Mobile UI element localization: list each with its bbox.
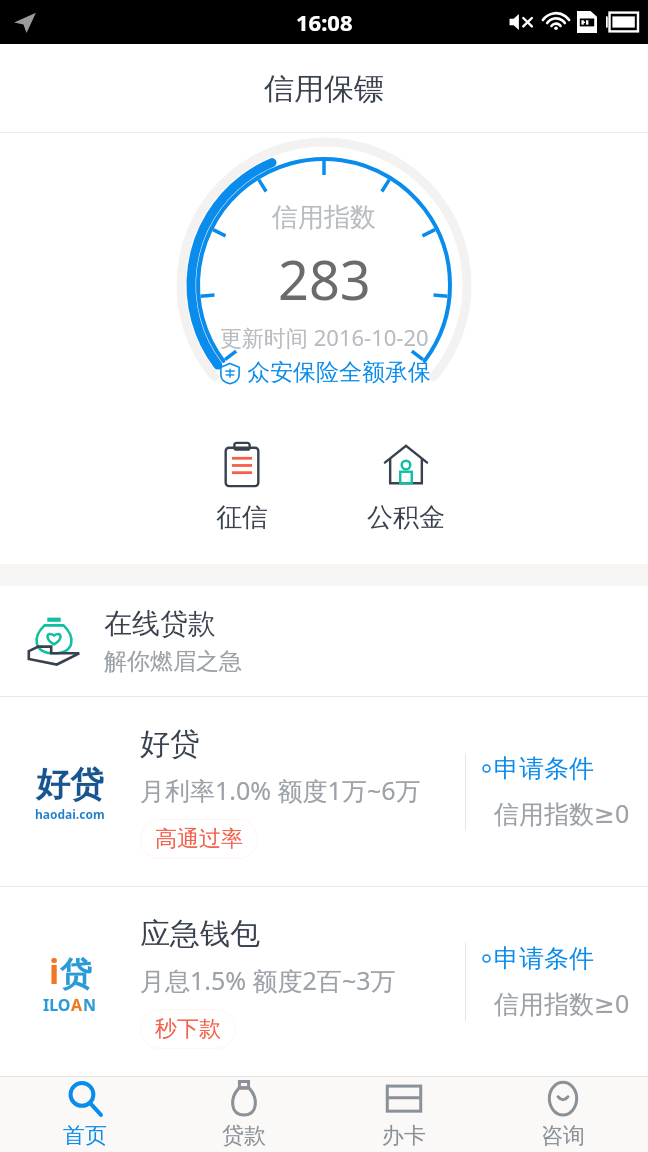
button[interactable]: 咨询 <box>488 1077 638 1152</box>
staticText: 信用保镖 <box>264 70 384 108</box>
staticText: 信用指数 <box>272 201 376 234</box>
staticText: 秒下款 <box>155 1015 221 1043</box>
staticText: A <box>71 994 83 1016</box>
button[interactable]: 办卡 <box>329 1077 479 1152</box>
staticText: ILO <box>43 994 71 1016</box>
staticText: 好贷 <box>36 763 104 806</box>
staticText: 283 <box>278 242 371 316</box>
button[interactable]: 贷款 <box>169 1077 319 1152</box>
button[interactable]: i <box>0 887 648 1076</box>
staticText: 月息1.5% 额度2百~3万 <box>140 963 396 997</box>
staticText: 信用指数≥0 <box>494 986 630 1020</box>
staticText: i <box>49 948 60 994</box>
staticText: 更新时间 2016-10-20 <box>220 322 429 352</box>
other: 征信 <box>218 441 266 489</box>
button[interactable]: 申请条件 <box>466 943 648 1020</box>
staticText: 在线贷款 <box>104 606 216 641</box>
button[interactable]: 申请条件 <box>466 753 648 830</box>
staticText: 征信 <box>216 501 268 534</box>
staticText: 首页 <box>63 1122 107 1150</box>
staticText: 贷款 <box>222 1122 266 1150</box>
staticText: 应急钱包 <box>140 915 260 953</box>
button[interactable]: 征信 <box>197 437 287 538</box>
staticText: 月利率1.0% 额度1万~6万 <box>140 773 421 807</box>
staticText: 申请条件 <box>494 753 594 784</box>
staticText: N <box>83 994 97 1016</box>
staticText: haodai.com <box>35 806 105 822</box>
staticText: 众安保险全额承保 <box>247 358 431 387</box>
button[interactable]: 在线贷款 <box>0 586 648 696</box>
staticText: 贷 <box>60 954 92 994</box>
staticText: 解你燃眉之急 <box>104 647 242 676</box>
button[interactable]: 好贷 <box>0 697 648 886</box>
staticText: 公积金 <box>367 501 445 534</box>
staticText: 办卡 <box>382 1122 426 1150</box>
button[interactable]: 公积金 <box>361 437 451 538</box>
staticText: 咨询 <box>541 1122 585 1150</box>
staticText: 信用指数≥0 <box>494 796 630 830</box>
staticText: 申请条件 <box>494 943 594 974</box>
staticText: 高通过率 <box>155 825 243 853</box>
other: 公积金 <box>382 441 430 489</box>
staticText: 16:08 <box>296 7 353 37</box>
staticText: 好贷 <box>140 725 200 763</box>
button[interactable]: 首页 <box>10 1077 160 1152</box>
